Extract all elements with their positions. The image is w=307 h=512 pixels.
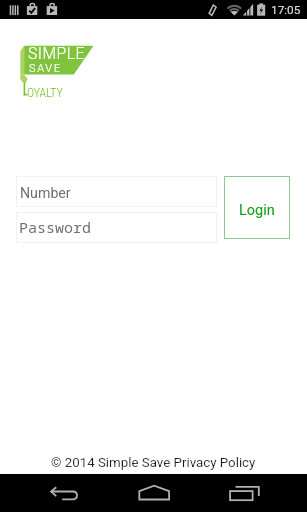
- staticText: © 2014 Simple Save Privacy Policy: [51, 455, 256, 471]
- button[interactable]: Recent apps: [164, 474, 212, 512]
- staticText: Password: [19, 217, 92, 237]
- button[interactable]: Number: [16, 176, 217, 207]
- staticText: Login: [239, 202, 275, 219]
- staticText: SAVE: [29, 62, 62, 75]
- button[interactable]: Back: [40, 474, 88, 512]
- button[interactable]: Login: [224, 176, 290, 239]
- button[interactable]: Home: [102, 474, 150, 512]
- staticText: 17:05: [271, 3, 301, 17]
- staticText: Number: [20, 185, 71, 202]
- staticText: OYALTY: [27, 86, 63, 100]
- staticText: SIMPLE: [28, 44, 85, 63]
- button[interactable]: Password: [16, 212, 217, 243]
